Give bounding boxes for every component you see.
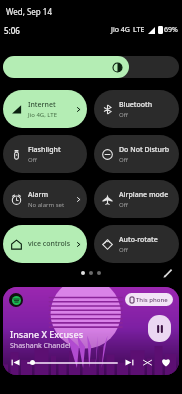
staticText: This phone (136, 296, 168, 304)
staticText: Airplane mode (119, 190, 169, 200)
staticText: Off (119, 246, 128, 254)
staticText: 5:06 (4, 25, 20, 36)
button[interactable]: Auto-rotate (94, 225, 179, 263)
button[interactable]: Internet (3, 90, 87, 128)
button[interactable]: vice controls (3, 225, 87, 263)
button[interactable]: Next (123, 356, 136, 369)
button[interactable]: Previous (9, 356, 22, 369)
staticText: No alarm set (28, 201, 65, 209)
button[interactable]: Bluetooth (94, 90, 179, 128)
staticText: Jio 4G, LTE (28, 111, 58, 119)
button[interactable]: Pause (148, 315, 171, 342)
button[interactable]: Shuffle (141, 356, 154, 369)
button[interactable]: Spotify (9, 293, 23, 307)
button[interactable]: Alarm (3, 180, 87, 218)
staticText: 69% (164, 25, 178, 35)
staticText: Do Not Disturb (119, 145, 170, 155)
button[interactable]: Favorite (159, 355, 173, 369)
staticText: Insane X Excuses (10, 328, 84, 340)
staticText: Off (119, 111, 128, 119)
staticText: Shashank Chandel (10, 341, 71, 351)
staticText: Internet (28, 100, 56, 110)
staticText: Jio 4G (111, 25, 130, 35)
staticText: Off (28, 156, 37, 164)
staticText: LTE (133, 25, 145, 35)
staticText: Alarm (28, 190, 49, 200)
staticText: Off (119, 156, 128, 164)
button[interactable]: Edit tiles (160, 265, 176, 281)
button[interactable]: Flashlight (3, 135, 87, 173)
staticText: vice controls (28, 239, 71, 249)
staticText: Auto-rotate (119, 235, 158, 245)
button[interactable]: Do Not Disturb (94, 135, 179, 173)
staticText: Bluetooth (119, 100, 153, 110)
staticText: Off (119, 201, 128, 209)
staticText: Wed, Sep 14 (6, 6, 52, 17)
staticText: Flashlight (28, 145, 61, 155)
button[interactable]: This phone (125, 293, 173, 306)
button[interactable]: Brightness (3, 56, 129, 78)
button[interactable]: Airplane mode (94, 180, 179, 218)
